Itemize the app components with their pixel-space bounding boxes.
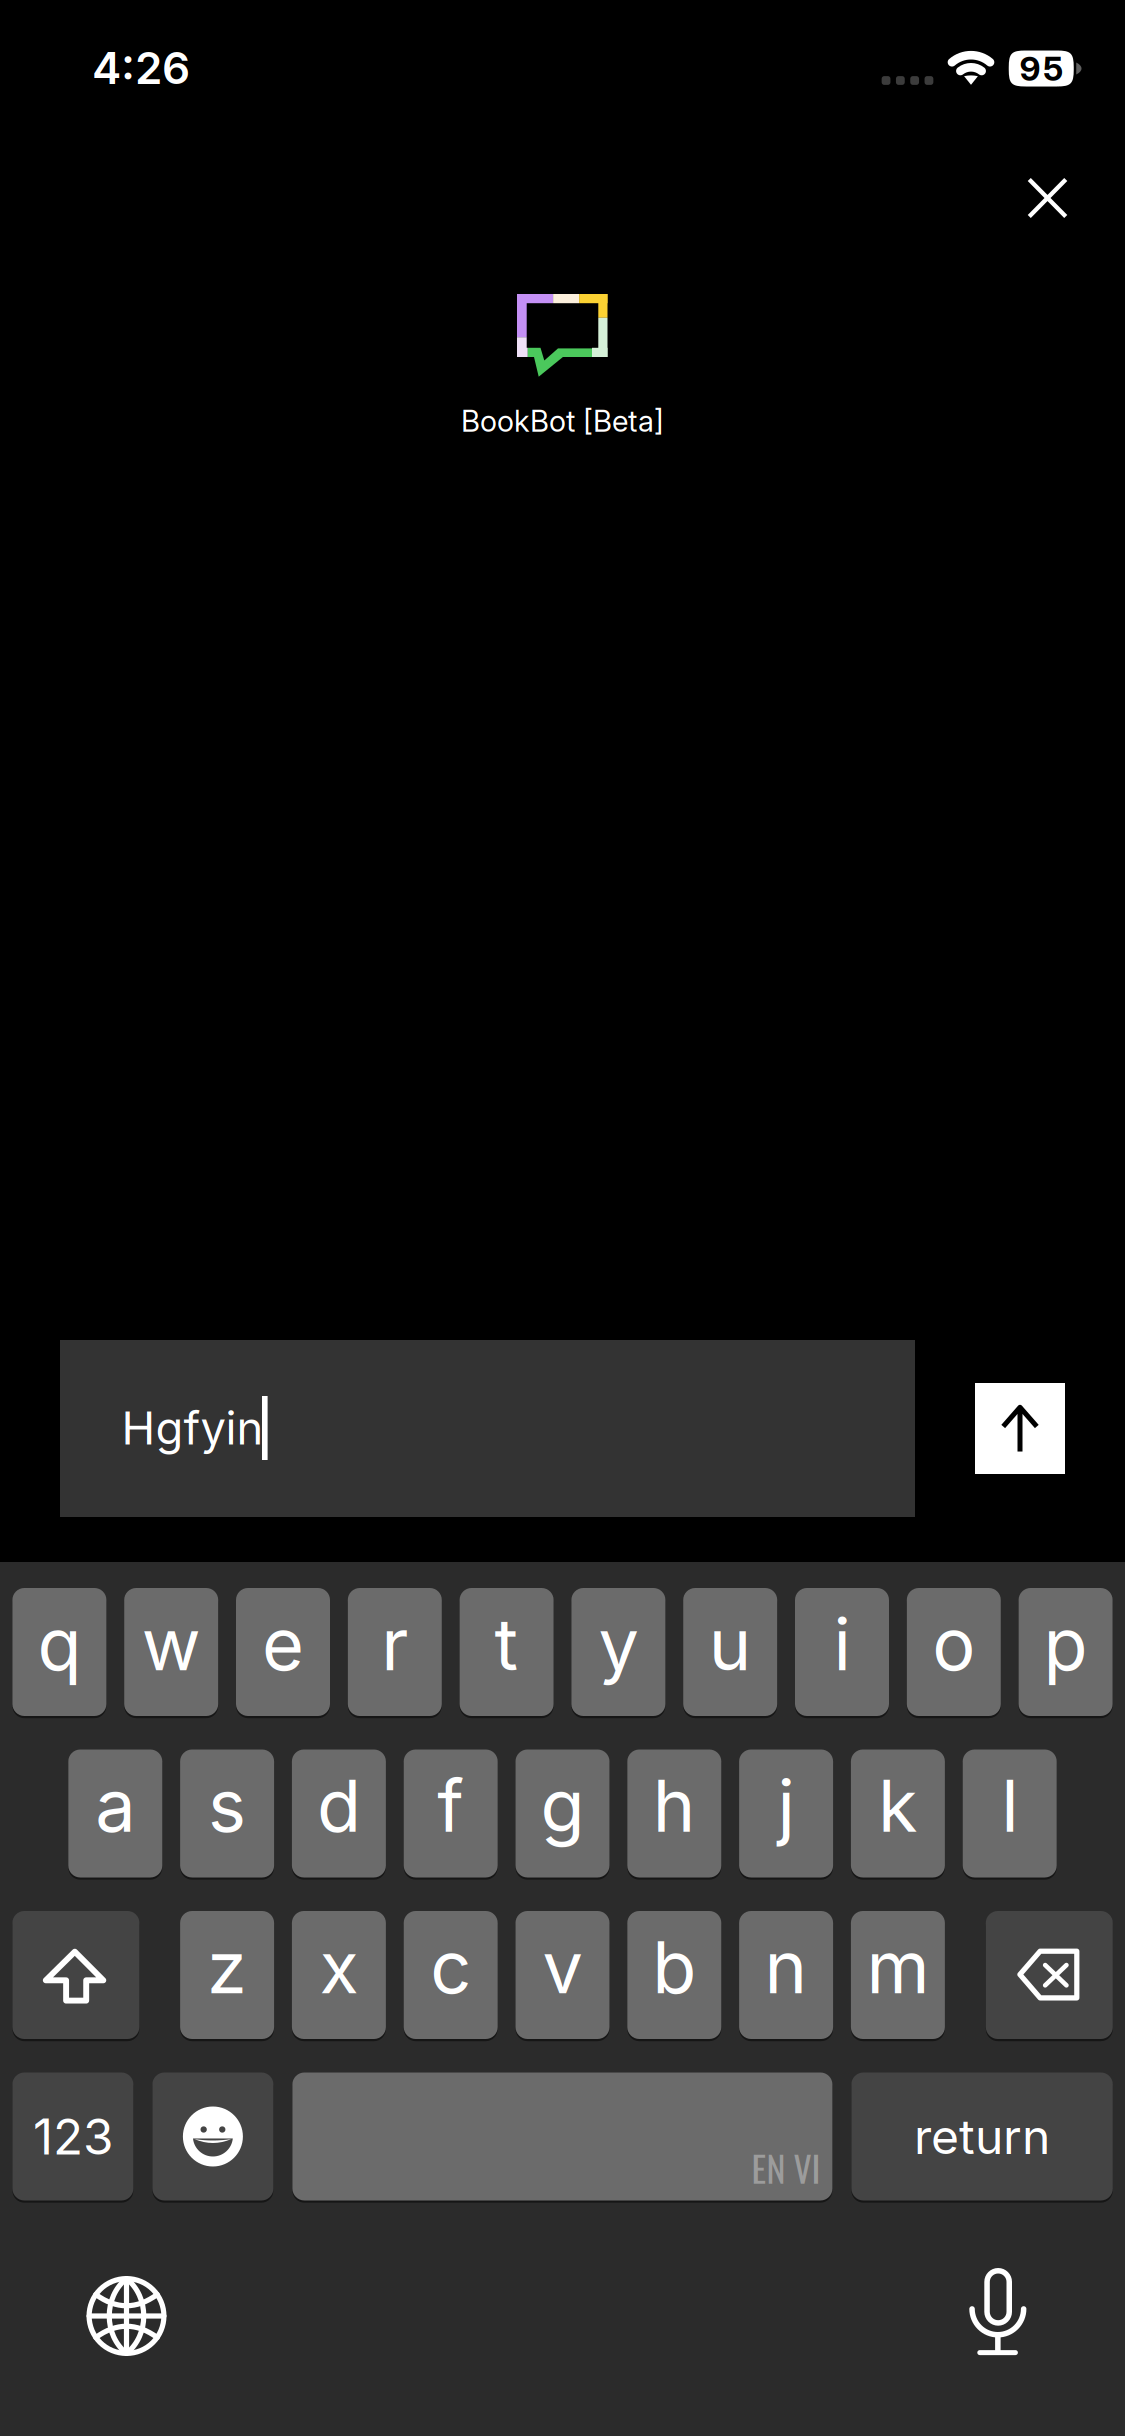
staticText: h (653, 1762, 696, 1849)
button[interactable]: q (12, 1588, 106, 1716)
staticText: BookBot [Beta] (461, 403, 664, 439)
button[interactable]: Hgfyin (60, 1340, 915, 1517)
staticText: i (833, 1600, 850, 1687)
staticText: u (709, 1600, 752, 1687)
button[interactable]: y (571, 1588, 665, 1716)
button[interactable]: v (515, 1911, 609, 2039)
button[interactable]: j (739, 1749, 833, 1877)
button[interactable]: Close (992, 143, 1102, 253)
button[interactable]: p (1019, 1588, 1113, 1716)
staticText: e (262, 1600, 304, 1687)
button[interactable]: m (851, 1911, 945, 2039)
button[interactable]: w (124, 1588, 218, 1716)
button[interactable]: Next keyboard (71, 2261, 181, 2371)
button[interactable]: Emoji (152, 2072, 273, 2200)
button[interactable]: x (292, 1911, 386, 2039)
button[interactable]: n (739, 1911, 833, 2039)
button[interactable]: k (851, 1749, 945, 1877)
button[interactable]: b (627, 1911, 721, 2039)
staticText: 123 (33, 2107, 113, 2166)
button[interactable]: c (404, 1911, 498, 2039)
button[interactable]: i (795, 1588, 889, 1716)
staticText: EN VI (751, 2141, 820, 2194)
staticText: 95 (1019, 48, 1063, 89)
staticText: a (95, 1762, 135, 1849)
staticText: b (652, 1923, 696, 2010)
button[interactable]: g (515, 1749, 609, 1877)
button[interactable]: t (460, 1588, 554, 1716)
staticText: c (430, 1923, 471, 2010)
button[interactable]: Delete (986, 1911, 1113, 2039)
button[interactable]: r (348, 1588, 442, 1716)
staticText: z (207, 1923, 247, 2010)
button[interactable]: z (180, 1911, 274, 2039)
staticText: f (437, 1762, 464, 1849)
staticText: d (317, 1762, 361, 1849)
staticText: m (866, 1923, 929, 2010)
staticText: w (142, 1600, 201, 1687)
staticText: p (1044, 1600, 1088, 1687)
button[interactable]: 123 (12, 2072, 133, 2200)
staticText: x (319, 1923, 358, 2010)
staticText: r (381, 1600, 408, 1687)
staticText: q (37, 1600, 81, 1687)
button[interactable]: space (292, 2072, 832, 2200)
button[interactable]: Shift (12, 1911, 139, 2039)
staticText: Hgfyin (121, 1401, 263, 1455)
button[interactable]: d (292, 1749, 386, 1877)
staticText: l (1001, 1762, 1018, 1849)
staticText: g (540, 1762, 584, 1849)
button[interactable]: Send (975, 1383, 1065, 1474)
button[interactable]: s (180, 1749, 274, 1877)
button[interactable]: l (963, 1749, 1057, 1877)
staticText: n (765, 1923, 808, 2010)
staticText: k (878, 1762, 918, 1849)
staticText: return (914, 2107, 1050, 2166)
button[interactable]: e (236, 1588, 330, 1716)
button[interactable]: return (851, 2072, 1113, 2200)
staticText: o (932, 1600, 975, 1687)
button[interactable]: f (404, 1749, 498, 1877)
staticText: 4:26 (92, 41, 190, 95)
staticText: t (495, 1600, 519, 1687)
staticText: j (778, 1762, 795, 1849)
staticText: v (542, 1923, 582, 2010)
staticText: s (208, 1762, 246, 1849)
button[interactable]: h (627, 1749, 721, 1877)
button[interactable]: o (907, 1588, 1001, 1716)
button[interactable]: a (68, 1749, 162, 1877)
staticText: y (598, 1600, 638, 1687)
button[interactable]: Dictate (943, 2257, 1053, 2367)
button[interactable]: u (683, 1588, 777, 1716)
